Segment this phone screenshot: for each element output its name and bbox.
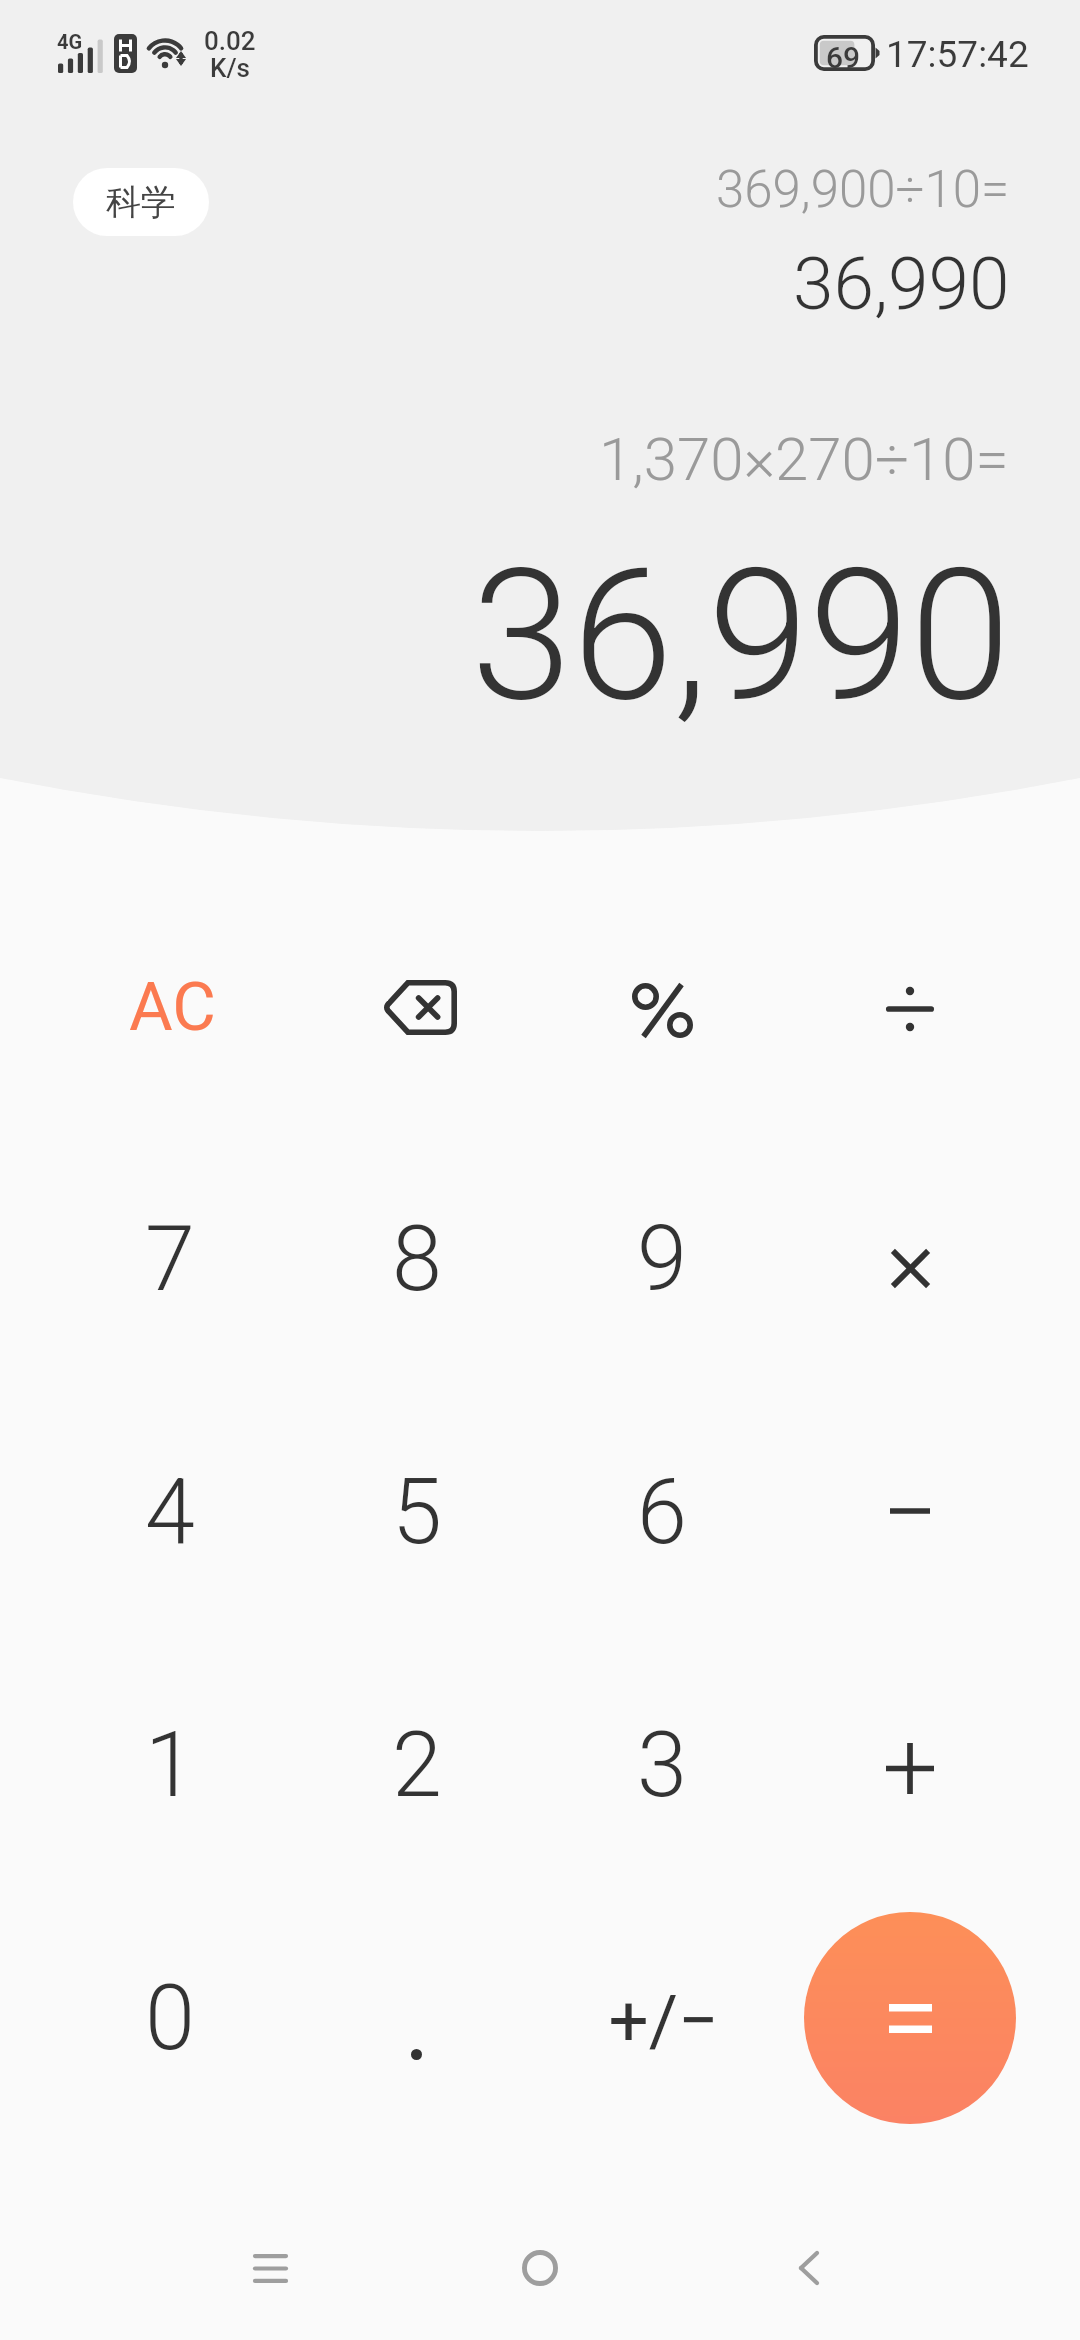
button[interactable]: 3 <box>547 1650 777 1880</box>
button[interactable]: AC <box>57 892 287 1122</box>
button[interactable]: Plus <box>795 1653 1025 1883</box>
staticText: 4G <box>57 30 83 53</box>
staticText: 1,370×270÷10= <box>599 424 1009 494</box>
staticText: 科学 <box>106 180 176 224</box>
staticText: 3 <box>637 1713 687 1818</box>
button[interactable]: 8 <box>302 1144 532 1374</box>
button[interactable]: Backspace <box>304 892 534 1122</box>
staticText: 4 <box>145 1460 195 1565</box>
button[interactable]: 6 <box>547 1397 777 1627</box>
staticText: +/− <box>608 1979 719 2062</box>
staticText: 0.02 <box>204 26 256 56</box>
button[interactable]: Decimal point <box>301 1939 531 2169</box>
staticText: K/s <box>210 53 250 83</box>
button[interactable]: 科学 <box>73 168 209 236</box>
button[interactable]: 2 <box>302 1650 532 1880</box>
button[interactable]: Recents <box>210 2208 330 2328</box>
staticText: 36,990 <box>471 529 1011 742</box>
staticText: 5 <box>392 1460 442 1565</box>
staticText: 69 <box>826 40 861 75</box>
staticText: 0 <box>145 1966 195 2071</box>
button[interactable]: Minus <box>795 1396 1025 1626</box>
button[interactable]: Back <box>749 2208 869 2328</box>
staticText: 7 <box>145 1207 195 1312</box>
button[interactable]: +/− <box>548 1905 778 2135</box>
button[interactable]: 1 <box>55 1650 285 1880</box>
staticText: 1 <box>145 1713 195 1818</box>
staticText: 8 <box>392 1207 442 1312</box>
button[interactable]: Home <box>480 2208 600 2328</box>
staticText: 2 <box>392 1713 442 1818</box>
button[interactable]: 0 <box>55 1903 285 2133</box>
button[interactable]: Percent <box>547 895 777 1125</box>
button[interactable]: 5 <box>302 1397 532 1627</box>
staticText: 36,990 <box>793 241 1010 327</box>
button[interactable]: Divide <box>795 894 1025 1124</box>
staticText: 9 <box>637 1207 687 1312</box>
staticText: 17:57:42 <box>886 33 1029 76</box>
button[interactable]: Multiply <box>795 1153 1025 1383</box>
button[interactable]: Equals <box>804 1912 1016 2124</box>
button[interactable]: 4 <box>55 1397 285 1627</box>
button[interactable]: 9 <box>547 1144 777 1374</box>
staticText: AC <box>129 968 216 1047</box>
button[interactable]: 7 <box>55 1144 285 1374</box>
staticText: 6 <box>637 1460 687 1565</box>
staticText: 369,900÷10= <box>716 160 1010 220</box>
